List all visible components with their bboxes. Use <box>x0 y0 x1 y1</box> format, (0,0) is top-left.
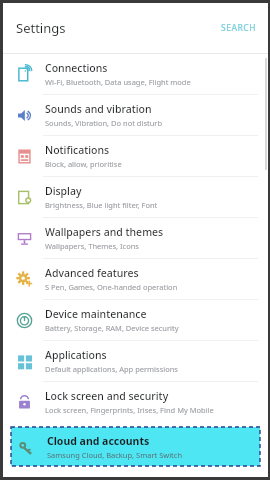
staticText: Lock screen, Fingerprints, Irises, Find … <box>45 405 214 415</box>
staticText: SEARCH <box>221 22 257 34</box>
button[interactable]: Advanced features <box>3 259 268 299</box>
staticText: Settings <box>16 19 66 37</box>
button[interactable]: Applications <box>3 341 268 381</box>
button[interactable]: Device maintenance <box>3 300 268 340</box>
staticText: Battery, Storage, RAM, Device security <box>45 323 179 333</box>
button[interactable]: Display <box>3 177 268 217</box>
staticText: Display <box>45 184 82 198</box>
staticText: Device maintenance <box>45 307 147 321</box>
staticText: Lock screen and security <box>45 389 169 403</box>
button[interactable]: Wallpapers and themes <box>3 218 268 258</box>
staticText: Sounds and vibration <box>45 102 152 116</box>
staticText: Cloud and accounts <box>47 434 150 448</box>
button[interactable]: Notifications <box>3 136 268 176</box>
button[interactable]: Cloud and accounts <box>11 427 260 466</box>
staticText: Connections <box>45 61 108 75</box>
staticText: Notifications <box>45 143 110 157</box>
staticText: Wallpapers, Themes, Icons <box>45 241 139 251</box>
staticText: Samsung Cloud, Backup, Smart Switch <box>47 450 183 460</box>
staticText: Block, allow, prioritise <box>45 159 122 169</box>
button[interactable]: Sounds and vibration <box>3 95 268 135</box>
staticText: Advanced features <box>45 266 139 280</box>
staticText: Sounds, Vibration, Do not disturb <box>45 118 163 128</box>
button[interactable]: Lock screen and security <box>3 382 268 422</box>
staticText: Default applications, App permissions <box>45 364 178 374</box>
staticText: Wi-Fi, Bluetooth, Data usage, Flight mod… <box>45 77 191 87</box>
button[interactable]: Connections <box>3 54 268 94</box>
staticText: Brightness, Blue light filter, Font <box>45 200 158 210</box>
button[interactable]: SEARCH <box>210 12 268 44</box>
staticText: Wallpapers and themes <box>45 225 164 239</box>
staticText: S Pen, Games, One-handed operation <box>45 282 178 292</box>
staticText: Applications <box>45 348 107 362</box>
